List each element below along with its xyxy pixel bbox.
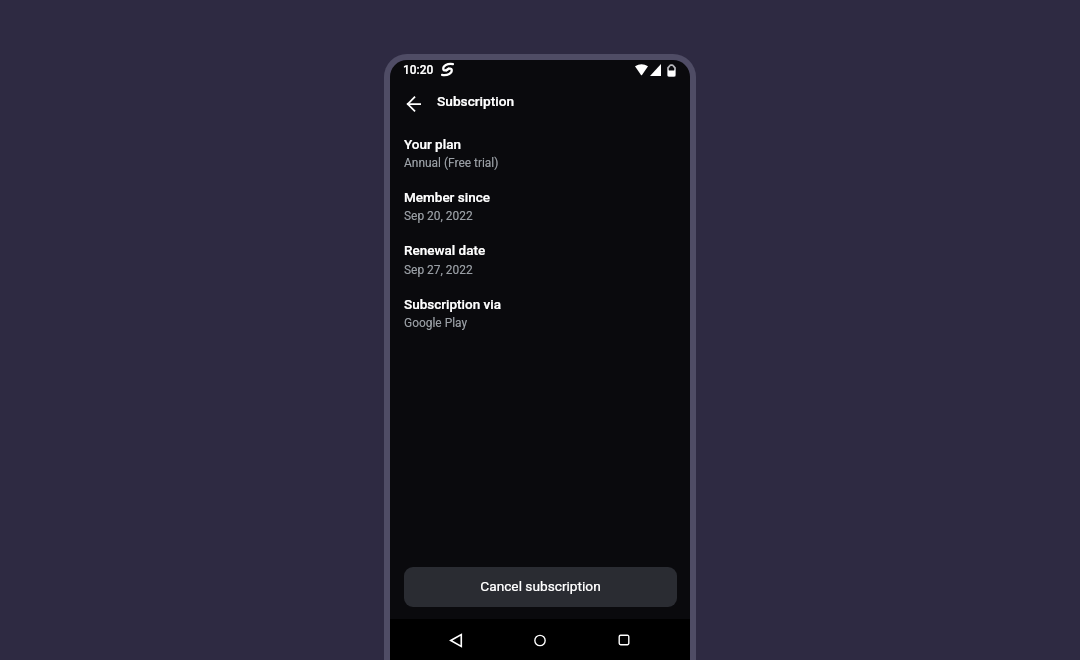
- staticText: Google Play: [404, 316, 468, 330]
- button[interactable]: Recent apps: [606, 622, 642, 658]
- staticText: 10:20: [403, 63, 434, 77]
- staticText: Subscription: [437, 93, 515, 109]
- staticText: Renewal date: [404, 242, 486, 258]
- staticText: Member since: [404, 189, 490, 205]
- staticText: Subscription via: [404, 296, 501, 312]
- button[interactable]: Cancel subscription: [404, 567, 677, 607]
- button[interactable]: Home: [522, 622, 558, 658]
- button[interactable]: Back: [400, 90, 428, 118]
- staticText: Cancel subscription: [480, 578, 601, 594]
- button[interactable]: Back: [438, 622, 474, 658]
- staticText: Annual (Free trial): [404, 156, 499, 170]
- staticText: Your plan: [404, 136, 461, 152]
- staticText: Sep 20, 2022: [404, 209, 473, 223]
- staticText: Sep 27, 2022: [404, 263, 473, 277]
